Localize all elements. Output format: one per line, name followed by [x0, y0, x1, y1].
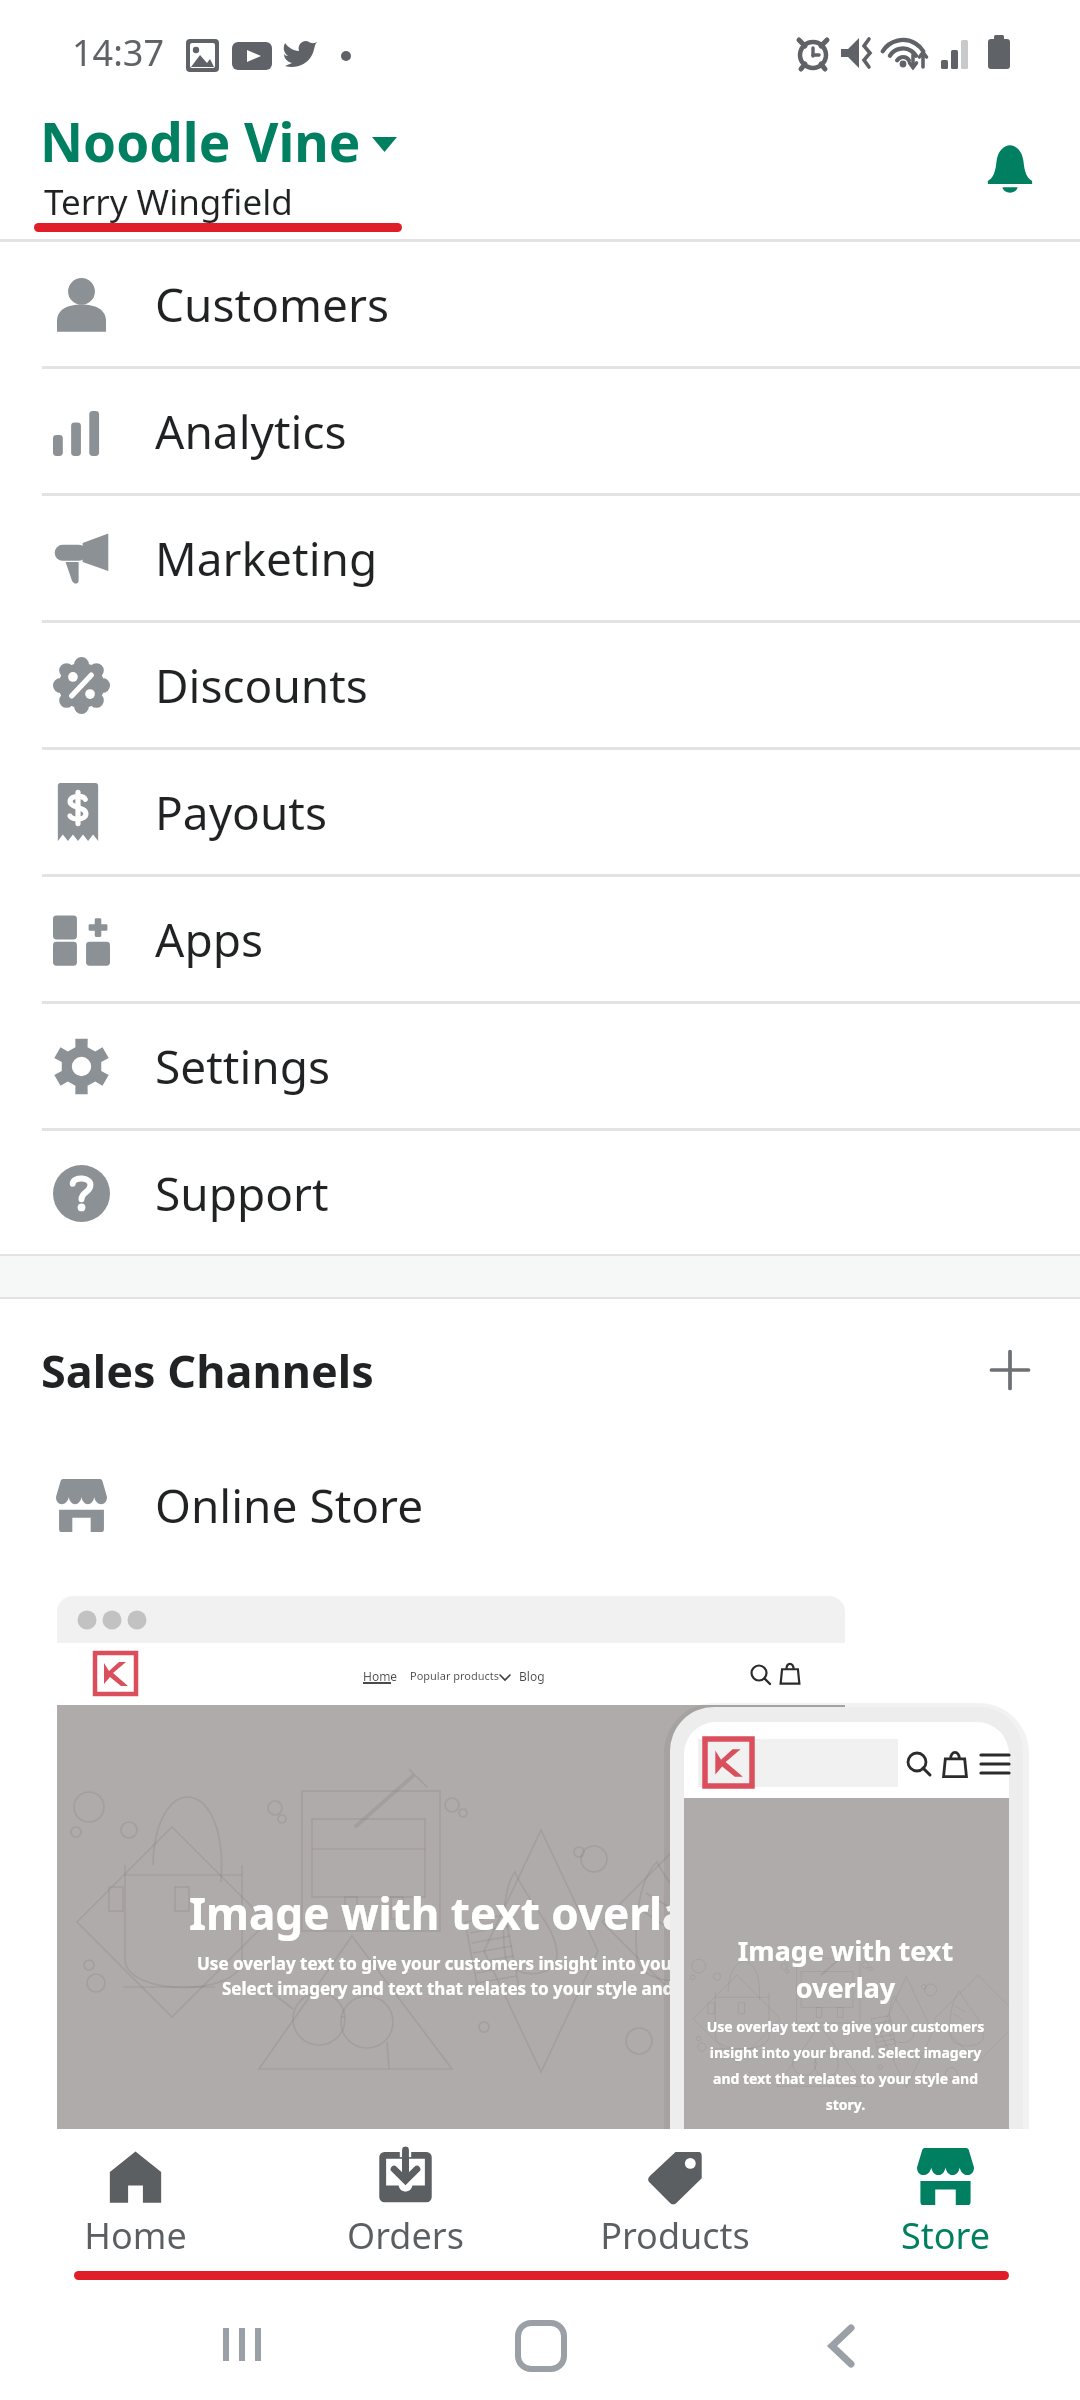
staticText: Orders — [347, 2211, 464, 2260]
staticText: Payouts — [155, 781, 327, 844]
staticText: Analytics — [155, 400, 347, 463]
staticText: Sales Channels — [41, 1340, 374, 1401]
staticText: Terry Wingfield — [44, 178, 293, 226]
staticText: Support — [155, 1162, 329, 1225]
staticText: Settings — [155, 1035, 331, 1098]
button[interactable]: Add sales channel — [968, 1328, 1052, 1412]
staticText: Use overlay text to give your customers … — [197, 1952, 739, 1975]
staticText: Image with text overlay — [189, 1883, 714, 1943]
button[interactable]: Noodle Vine — [40, 104, 420, 229]
staticText: Discounts — [155, 654, 368, 717]
button[interactable]: Customers — [0, 242, 1080, 366]
staticText: Noodle Vine — [40, 105, 361, 177]
staticText: 14:37 — [72, 28, 165, 77]
button[interactable]: Marketing — [0, 496, 1080, 620]
button[interactable]: Support — [0, 1131, 1080, 1255]
staticText: Popular products — [410, 1668, 500, 1683]
button[interactable]: Online Store — [0, 1441, 1080, 1569]
button[interactable]: Notifications — [968, 127, 1052, 211]
staticText: Online Store — [155, 1474, 424, 1537]
staticText: Image with text overlay — [728, 1932, 963, 2006]
staticText: Marketing — [155, 527, 378, 590]
button[interactable]: Home — [0, 2129, 270, 2283]
staticText: Products — [600, 2211, 750, 2260]
staticText: Use overlay text to give your customers … — [705, 2017, 986, 2115]
button[interactable]: Settings — [0, 1004, 1080, 1128]
button[interactable]: Store — [810, 2129, 1080, 2283]
button[interactable]: Payouts — [0, 750, 1080, 874]
button[interactable]: Discounts — [0, 623, 1080, 747]
staticText: Store — [901, 2211, 990, 2260]
staticText: Blog — [519, 1668, 545, 1684]
staticText: Home — [363, 1668, 398, 1684]
button[interactable]: Products — [540, 2129, 810, 2283]
staticText: Customers — [155, 273, 389, 336]
staticText: Apps — [155, 908, 264, 971]
staticText: Home — [84, 2211, 187, 2260]
button[interactable]: Apps — [0, 877, 1080, 1001]
staticText: Select imagery and text that relates to … — [222, 1977, 726, 2000]
button[interactable]: Orders — [270, 2129, 540, 2283]
button[interactable]: Analytics — [0, 369, 1080, 493]
